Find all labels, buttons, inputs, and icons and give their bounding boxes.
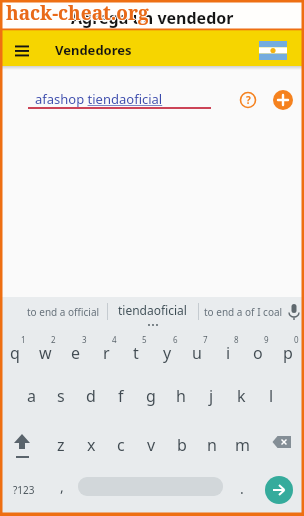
button[interactable]: n	[197, 432, 227, 458]
button[interactable]: o	[243, 340, 273, 366]
button[interactable]	[259, 41, 287, 60]
button[interactable]: f	[106, 383, 136, 409]
button[interactable]: p	[273, 340, 303, 366]
staticText: z	[57, 434, 65, 456]
button[interactable]: u	[182, 340, 212, 366]
staticText: h	[176, 385, 186, 407]
button[interactable]: to end a of I coal	[198, 297, 288, 327]
staticText: u	[192, 342, 202, 364]
button[interactable]: d	[76, 383, 106, 409]
staticText: 7	[203, 334, 208, 345]
staticText: to end a official	[27, 305, 100, 319]
staticText: ?123	[13, 483, 35, 497]
button[interactable]: q	[0, 340, 30, 366]
staticText: t	[133, 342, 139, 364]
button[interactable]: l	[256, 383, 286, 409]
staticText: i	[226, 342, 231, 364]
staticText: 0	[294, 334, 299, 345]
staticText: 3	[82, 334, 87, 345]
staticText: g	[146, 385, 156, 407]
staticText: b	[177, 434, 187, 456]
staticText: p	[283, 342, 293, 364]
button[interactable]: ?	[239, 91, 257, 109]
staticText: j	[209, 385, 214, 407]
button[interactable]	[8, 433, 36, 461]
button[interactable]: c	[106, 432, 136, 458]
button[interactable]: j	[196, 383, 226, 409]
button[interactable]: e	[61, 340, 91, 366]
staticText: l	[269, 385, 274, 407]
staticText: o	[253, 342, 263, 364]
staticText: ,	[60, 477, 64, 496]
staticText: hack-cheat.org	[6, 1, 149, 27]
button[interactable]: to end a official	[20, 297, 107, 327]
button[interactable]: ,	[50, 474, 74, 498]
button[interactable]	[78, 477, 223, 496]
staticText: a	[27, 385, 36, 407]
staticText: c	[117, 434, 125, 456]
button[interactable]: g	[136, 383, 166, 409]
button[interactable]: v	[136, 432, 166, 458]
button[interactable]: t	[121, 340, 151, 366]
staticText: e	[71, 342, 81, 364]
button[interactable]: ?123	[6, 478, 42, 502]
button[interactable]: h	[166, 383, 196, 409]
button[interactable]	[265, 476, 293, 504]
staticText: s	[57, 385, 65, 407]
button[interactable]: x	[76, 432, 106, 458]
button[interactable]: m	[227, 432, 257, 458]
staticText: afashop tiendaoficial	[35, 90, 163, 108]
staticText: hack-cheat.org	[7, 0, 150, 26]
button[interactable]	[272, 435, 292, 450]
staticText: 9	[264, 334, 269, 345]
button[interactable]: s	[46, 383, 76, 409]
button[interactable]: tiendaoficial	[107, 297, 198, 323]
staticText: 6	[173, 334, 178, 345]
button[interactable]: y	[152, 340, 182, 366]
staticText: hack-cheat.org	[6, 0, 149, 25]
button[interactable]: a	[16, 383, 46, 409]
staticText: f	[118, 385, 124, 407]
button[interactable]	[286, 302, 302, 322]
staticText: y	[163, 342, 172, 364]
staticText: ?	[246, 93, 251, 107]
staticText: k	[237, 385, 246, 407]
staticText: 8	[234, 334, 239, 345]
staticText: 1	[21, 334, 26, 345]
staticText: hack-cheat.org	[5, 0, 148, 26]
staticText: 5	[142, 334, 147, 345]
staticText: d	[86, 385, 96, 407]
button[interactable]: w	[30, 340, 60, 366]
staticText: hack-cheat.org	[6, 0, 149, 26]
staticText: v	[147, 434, 156, 456]
button[interactable]: z	[46, 432, 76, 458]
staticText: Vendedores	[55, 41, 132, 59]
button[interactable]	[8, 36, 36, 58]
staticText: m	[235, 434, 250, 456]
staticText: to end a of I coal	[204, 305, 283, 319]
button[interactable]	[273, 90, 293, 110]
staticText: tiendaoficial	[118, 302, 187, 318]
staticText: 4	[112, 334, 117, 345]
staticText: .	[240, 479, 244, 498]
staticText: r	[103, 342, 110, 364]
staticText: x	[87, 434, 96, 456]
staticText: q	[10, 342, 20, 364]
staticText: n	[207, 434, 217, 456]
button[interactable]: r	[91, 340, 121, 366]
button[interactable]: i	[213, 340, 243, 366]
button[interactable]: .	[231, 476, 253, 500]
staticText: Agrega un vendedor	[71, 7, 234, 29]
button[interactable]: k	[226, 383, 256, 409]
staticText: 2	[51, 334, 56, 345]
staticText: w	[39, 342, 52, 364]
button[interactable]: b	[167, 432, 197, 458]
